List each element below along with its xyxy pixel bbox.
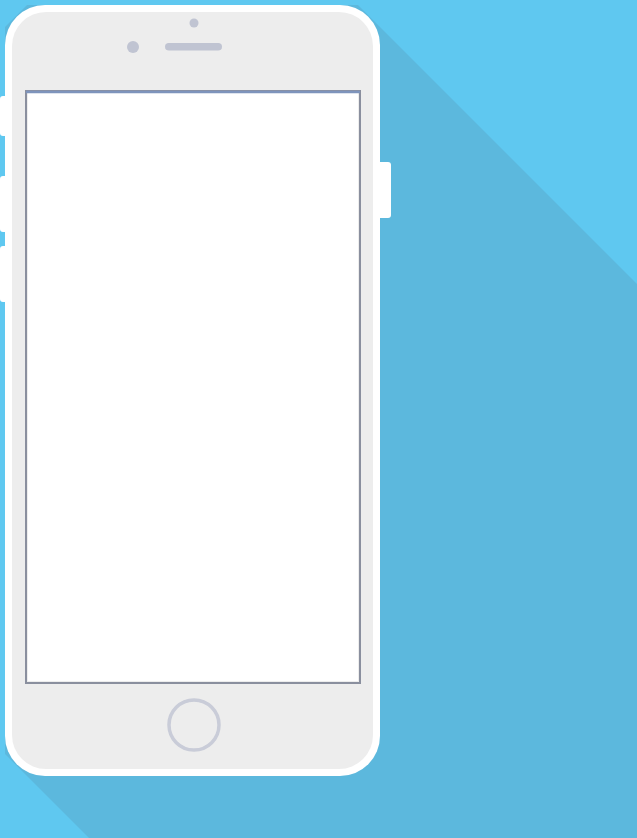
button[interactable]: Home <box>169 700 219 750</box>
button[interactable]: Volume down <box>0 246 16 302</box>
button[interactable]: Silent switch <box>0 96 16 136</box>
button[interactable]: Volume up <box>0 176 16 232</box>
button[interactable]: Power <box>369 162 385 218</box>
